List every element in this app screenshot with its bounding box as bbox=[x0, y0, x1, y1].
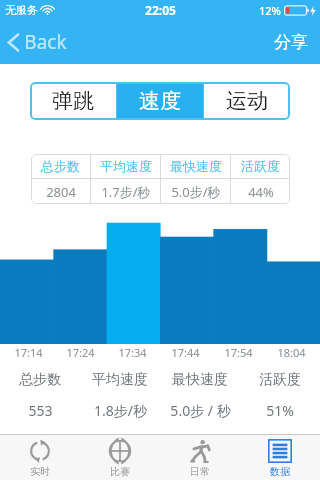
button[interactable]: 分享 bbox=[262, 26, 320, 59]
staticText: 553 bbox=[28, 401, 53, 420]
staticText: 无服务 bbox=[5, 3, 38, 17]
staticText: 51% bbox=[266, 401, 294, 420]
button[interactable]: 比赛 bbox=[80, 435, 160, 480]
staticText: 分享 bbox=[274, 32, 308, 53]
staticText: 5.0步 / 秒 bbox=[170, 401, 231, 420]
staticText: 1.8步/秒 bbox=[94, 401, 147, 420]
other: 比赛 bbox=[107, 438, 133, 464]
staticText: 17:54 bbox=[224, 345, 253, 360]
staticText: 总步数 bbox=[19, 371, 61, 389]
staticText: 5.0步/秒 bbox=[171, 183, 221, 201]
staticText: 12% bbox=[259, 3, 281, 18]
staticText: 弹跳 bbox=[52, 88, 94, 114]
other: 实时 bbox=[27, 438, 53, 464]
staticText: 实时 bbox=[30, 465, 50, 478]
staticText: 速度 bbox=[139, 88, 181, 114]
other: 数据 bbox=[267, 438, 293, 464]
staticText: 1.7步/秒 bbox=[101, 183, 151, 201]
staticText: 17:34 bbox=[118, 345, 147, 360]
button[interactable]: 日常 bbox=[160, 435, 240, 480]
button[interactable]: Back bbox=[0, 23, 79, 61]
button[interactable]: 数据 bbox=[240, 435, 320, 480]
button[interactable]: 速度 bbox=[117, 82, 203, 120]
staticText: 运动 bbox=[226, 88, 268, 114]
staticText: 17:44 bbox=[171, 345, 200, 360]
staticText: 比赛 bbox=[110, 465, 130, 478]
button[interactable]: 实时 bbox=[0, 435, 80, 480]
staticText: 平均速度 bbox=[100, 158, 152, 174]
staticText: 日常 bbox=[190, 465, 210, 478]
staticText: 18:04 bbox=[277, 345, 306, 360]
staticText: 17:24 bbox=[66, 345, 95, 360]
button[interactable]: 运动 bbox=[204, 82, 290, 120]
staticText: 总步数 bbox=[41, 158, 80, 174]
staticText: 活跃度 bbox=[259, 371, 301, 389]
staticText: 17:14 bbox=[14, 345, 43, 360]
staticText: 活跃度 bbox=[241, 158, 280, 174]
staticText: 22:05 bbox=[145, 2, 176, 18]
staticText: Back bbox=[24, 29, 67, 55]
staticText: 最快速度 bbox=[172, 371, 228, 389]
staticText: 最快速度 bbox=[170, 158, 222, 174]
button[interactable]: 弹跳 bbox=[30, 82, 116, 120]
staticText: 数据 bbox=[270, 465, 290, 478]
staticText: 2804 bbox=[46, 183, 76, 201]
staticText: 平均速度 bbox=[92, 371, 148, 389]
staticText: 44% bbox=[248, 183, 274, 201]
other: 日常 bbox=[187, 438, 213, 464]
